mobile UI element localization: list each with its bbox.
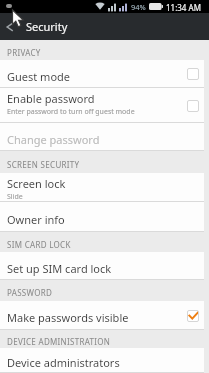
staticText: Make passwords visible <box>7 310 187 325</box>
button[interactable]: Guest mode <box>0 60 204 88</box>
staticText: SIM CARD LOCK <box>7 239 71 250</box>
staticText: Set up SIM card lock <box>7 261 204 276</box>
button[interactable]: Enable password <box>0 88 204 123</box>
staticText: Guest mode <box>7 69 187 84</box>
button[interactable]: Screen lock <box>0 173 204 202</box>
staticText: Enter password to turn off guest mode <box>7 107 135 117</box>
staticText: DEVICE ADMINISTRATION <box>7 336 111 347</box>
staticText: Owner info <box>7 212 204 227</box>
button[interactable]: Owner info <box>0 202 204 232</box>
button[interactable]: Set up SIM card lock <box>0 252 204 280</box>
staticText: Device administrators <box>7 355 204 370</box>
staticText: PASSWORD <box>7 287 53 298</box>
button[interactable]: Device administrators <box>0 348 204 373</box>
staticText: Screen lock <box>7 176 66 191</box>
button[interactable]: Security <box>0 13 209 40</box>
staticText: Change password <box>7 132 204 147</box>
button[interactable]: Change password <box>0 123 204 151</box>
staticText: Enable password <box>7 91 95 106</box>
staticText: PRIVACY <box>7 47 41 58</box>
button[interactable]: Make passwords visible <box>0 301 204 330</box>
staticText: 11:34 AM <box>166 2 201 13</box>
staticText: SCREEN SECURITY <box>7 159 80 170</box>
staticText: 94% <box>131 2 146 12</box>
staticText: Security <box>26 19 68 34</box>
staticText: Slide <box>7 192 23 202</box>
